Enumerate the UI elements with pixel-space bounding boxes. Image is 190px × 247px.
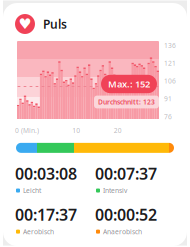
staticText: 106 [164,77,176,85]
staticText: 10 [72,126,80,135]
staticText: Anaerobisch [103,227,142,236]
button[interactable]: 00:07:37 [95,163,175,195]
staticText: 136 [164,41,176,50]
staticText: 121 [164,59,176,68]
staticText: Aerobisch [23,227,54,236]
staticText: 76 [164,112,172,121]
staticText: 0 (Min.) [15,126,39,135]
staticText: 00:17:37 [15,204,77,225]
staticText: Max.: 152 [108,78,150,90]
staticText: Puls [43,16,67,32]
staticText: 00:03:08 [15,163,77,184]
staticText: 91 [164,94,172,103]
staticText: Durchschnitt: 123 [98,98,155,106]
button[interactable]: 00:00:52 [95,204,175,236]
staticText: Intensiv [103,186,127,195]
staticText: 20 [114,126,122,135]
button[interactable]: 00:03:08 [15,163,95,195]
button[interactable]: Pulszonen [4,137,186,163]
staticText: ♥ [18,16,31,32]
button[interactable]: 00:17:37 [15,204,95,236]
staticText: 00:00:52 [95,204,157,225]
staticText: 00:07:37 [95,163,157,184]
staticText: Leicht [23,186,41,195]
